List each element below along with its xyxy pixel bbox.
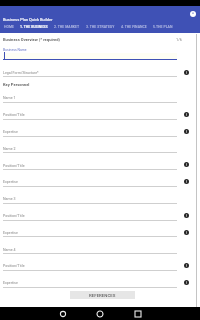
staticText: 3. THE STRATEGY [86,25,115,29]
button[interactable]: 3. THE STRATEGY [86,25,115,29]
staticText: 5.THE PLAN [153,25,173,29]
button[interactable]: 4. THE FINANCE [121,25,147,29]
button[interactable]: More information [181,210,191,220]
staticText: Name 2 [3,147,16,151]
button[interactable]: More information [181,277,191,287]
staticText: Business Overview (* required) [3,37,60,42]
staticText: Position/Title [3,214,25,218]
button[interactable]: More information [181,159,191,169]
button[interactable]: Account [187,8,198,19]
staticText: Key Personnel [3,82,30,87]
staticText: Name 3 [3,197,16,201]
staticText: 2. THE MARKET [54,25,80,29]
button[interactable]: More information [181,67,191,77]
staticText: 4. THE FINANCE [121,25,147,29]
staticText: HOME [4,25,14,29]
button[interactable]: HOME [4,25,14,29]
staticText: Business Name [3,48,27,52]
staticText: Legal Form/Structure* [3,71,39,75]
button[interactable]: 2. THE MARKET [54,25,80,29]
staticText: Name 4 [3,248,16,252]
button[interactable]: 1. THE BUSINESS [20,25,48,29]
staticText: Position/Title [3,113,25,117]
staticText: Expertise [3,281,18,285]
button[interactable]: More information [181,227,191,237]
staticText: Position/Title [3,264,25,268]
staticText: Expertise [3,231,18,235]
button[interactable]: 5.THE PLAN [153,25,173,29]
button[interactable]: More information [181,176,191,186]
button[interactable]: Back [58,309,68,319]
button[interactable]: More information [181,260,191,270]
staticText: Position/Title [3,164,25,168]
staticText: 1/6 [176,37,182,41]
button[interactable]: More information [181,126,191,136]
staticText: Name 1 [3,96,16,100]
staticText: REFERENCES [89,293,116,298]
staticText: 1. THE BUSINESS [20,25,48,29]
staticText: Expertise [3,130,18,134]
staticText: Expertise [3,180,18,184]
staticText: Business Plan Quick Builder [3,17,53,22]
button[interactable]: Home [95,309,105,319]
button[interactable]: Recent apps [133,309,143,319]
button[interactable]: REFERENCES [70,291,135,299]
button[interactable]: More information [181,109,191,119]
